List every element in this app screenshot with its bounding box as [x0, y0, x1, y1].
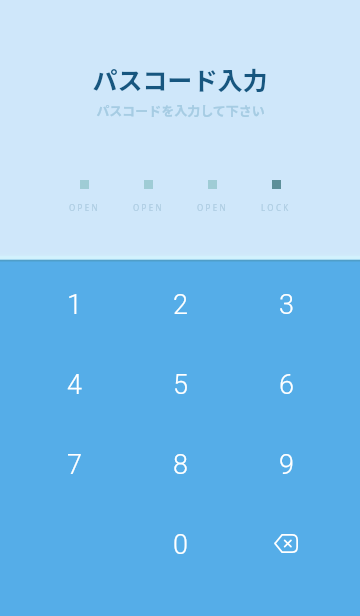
- button[interactable]: 2: [127, 265, 233, 345]
- staticText: 4: [67, 369, 82, 401]
- button[interactable]: Delete: [266, 525, 306, 565]
- button[interactable]: 5: [127, 345, 233, 425]
- staticText: パスコード入力: [92, 61, 268, 97]
- staticText: 6: [279, 369, 294, 401]
- staticText: 8: [173, 449, 188, 481]
- staticText: 9: [279, 449, 294, 481]
- button[interactable]: Delete: [233, 505, 339, 585]
- button[interactable]: 3: [233, 265, 339, 345]
- staticText: 7: [67, 449, 82, 481]
- button[interactable]: 1: [21, 265, 127, 345]
- staticText: OPEN: [133, 202, 164, 213]
- staticText: LOCK: [261, 202, 291, 213]
- button[interactable]: 6: [233, 345, 339, 425]
- staticText: 2: [173, 289, 188, 321]
- button[interactable]: 7: [21, 425, 127, 505]
- button[interactable]: 8: [127, 425, 233, 505]
- staticText: 0: [173, 529, 188, 561]
- staticText: 5: [173, 369, 188, 401]
- staticText: 1: [67, 289, 82, 321]
- staticText: パスコードを入力して下さい: [96, 101, 265, 120]
- button[interactable]: 4: [21, 345, 127, 425]
- button[interactable]: 9: [233, 425, 339, 505]
- staticText: OPEN: [69, 202, 100, 213]
- button[interactable]: 0: [127, 505, 233, 585]
- staticText: 3: [279, 289, 294, 321]
- staticText: OPEN: [197, 202, 228, 213]
